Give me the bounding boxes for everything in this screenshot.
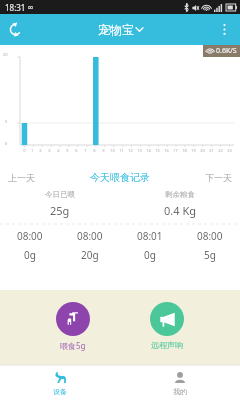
button[interactable]: More options [209,14,240,45]
staticText: 19 [191,148,196,153]
staticText: 11 [119,148,124,153]
staticText: 0g [144,248,156,262]
staticText: 18:31 [5,2,26,13]
staticText: 0.6K/S [216,46,237,56]
staticText: 我的 [173,387,187,396]
button[interactable]: 上一天 [6,170,37,185]
button[interactable]: 08:00 [60,229,120,262]
staticText: 20 [200,148,205,153]
staticText: 宠物宝 [98,22,134,37]
staticText: 13 [137,148,142,153]
button[interactable]: 宠物宝 [98,22,143,37]
button[interactable]: 远程声响 [146,298,188,354]
staticText: 10 [110,148,115,153]
staticText: 今日已喂 [45,190,75,199]
button[interactable]: 我的 [120,366,240,400]
staticText: 3 [48,148,51,153]
staticText: 0g [24,248,36,262]
staticText: 下一天 [205,172,232,183]
staticText: 喂食5g [60,340,86,351]
staticText: 20g [81,248,99,262]
staticText: 1 [31,148,34,153]
button[interactable]: 下一天 [203,170,234,185]
staticText: 2 [39,148,42,153]
staticText: 15 [155,148,160,153]
staticText: 08:01 [137,229,163,243]
staticText: 20 [3,52,8,57]
staticText: 0 [23,148,26,153]
staticText: 上一天 [8,172,35,183]
button[interactable]: 喂食5g [52,298,94,355]
button[interactable]: 08:00 [180,229,240,262]
staticText: 5 [66,148,69,153]
staticText: 22 [218,148,223,153]
staticText: 17 [173,148,178,153]
staticText: 08:00 [197,229,223,243]
staticText: 设备 [53,387,67,396]
staticText: 7 [84,148,87,153]
button[interactable]: 设备 [0,366,120,400]
staticText: 8 [93,148,96,153]
button[interactable]: 08:00 [0,229,60,262]
staticText: 23 [227,148,232,153]
staticText: 16 [164,148,169,153]
staticText: 0.4 Kg [164,203,196,218]
staticText: 今天喂食记录 [90,171,150,184]
staticText: 4 [57,148,60,153]
staticText: 21 [209,148,214,153]
button[interactable]: Refresh [0,14,31,45]
staticText: 6 [75,148,78,153]
staticText: 25g [50,203,70,218]
staticText: 远程声响 [151,340,183,350]
staticText: 5g [204,248,216,262]
staticText: 5 [5,119,8,124]
staticText: 0 [5,141,8,146]
staticText: 08:00 [77,229,103,243]
staticText: 08:00 [17,229,43,243]
staticText: 14 [146,148,151,153]
staticText: 剩余粮食 [165,190,195,199]
staticText: 12 [128,148,133,153]
staticText: 9 [102,148,105,153]
button[interactable]: 08:01 [120,229,180,262]
staticText: ∞ [27,3,34,12]
staticText: 18 [182,148,187,153]
